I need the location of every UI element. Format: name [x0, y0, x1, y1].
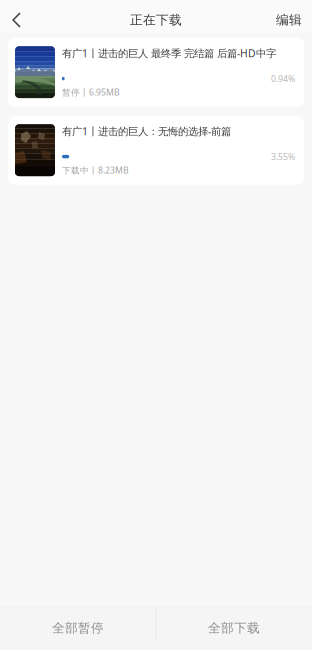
button[interactable]: 编辑 — [266, 7, 312, 33]
button[interactable]: 有广1丨进击的巨人 最终季 完结篇 后篇-HD中字 — [8, 38, 304, 107]
staticText: 全部下载 — [208, 620, 260, 636]
staticText: 暂停丨6.95MB — [62, 86, 120, 98]
staticText: 下载中丨8.23MB — [62, 164, 129, 176]
staticText: 编辑 — [276, 12, 302, 28]
button[interactable]: 全部下载 — [156, 606, 312, 650]
staticText: 有广1丨进击的巨人 最终季 完结篇 后篇-HD中字 — [62, 46, 276, 60]
staticText: 有广1丨进击的巨人：无悔的选择-前篇 — [62, 124, 231, 138]
staticText: 全部暂停 — [52, 620, 104, 636]
staticText: 3.55% — [271, 151, 295, 162]
staticText: 0.94% — [271, 73, 295, 84]
staticText: 正在下载 — [130, 12, 182, 28]
button[interactable]: 全部暂停 — [0, 606, 156, 650]
button[interactable]: 返回 — [0, 7, 33, 33]
button[interactable]: 有广1丨进击的巨人：无悔的选择-前篇 — [8, 116, 304, 185]
